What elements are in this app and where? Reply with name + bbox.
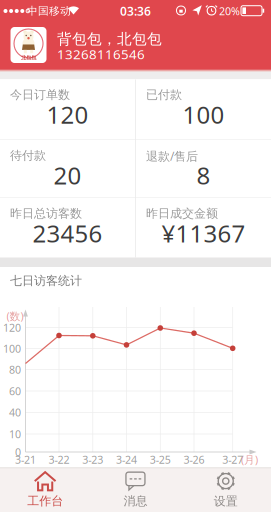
staticText: 北包包 xyxy=(21,54,36,61)
button[interactable]: 消息 xyxy=(90,467,181,512)
staticText: 今日订单数 xyxy=(10,87,70,102)
staticText: 昨日总访客数 xyxy=(10,206,82,221)
button[interactable]: 退款/售后 xyxy=(136,140,271,197)
staticText: 3-24 xyxy=(116,452,137,467)
staticText: ¥11367 xyxy=(162,217,246,249)
staticText: 消息 xyxy=(123,494,147,508)
staticText: 3-26 xyxy=(183,452,204,467)
button[interactable]: 今日订单数 xyxy=(0,79,135,139)
staticText: 120 xyxy=(46,99,88,130)
staticText: 80 xyxy=(9,362,21,377)
staticText: 100 xyxy=(3,341,21,356)
button[interactable]: 昨日总访客数 xyxy=(0,198,135,257)
staticText: 退款/售后 xyxy=(146,148,198,164)
button[interactable]: 待付款 xyxy=(0,140,135,197)
staticText: 3-23 xyxy=(82,452,103,467)
staticText: 60 xyxy=(9,384,21,398)
staticText: 昨日成交金额 xyxy=(146,206,218,221)
staticText: 03:36 xyxy=(120,3,151,19)
staticText: 设置 xyxy=(214,494,238,509)
staticText: 23456 xyxy=(32,217,102,249)
staticText: (数) xyxy=(6,309,23,323)
staticText: 20 xyxy=(53,159,81,191)
staticText: 8 xyxy=(197,159,211,191)
button[interactable]: 工作台 xyxy=(0,467,90,512)
staticText: 背包包，北包包 xyxy=(57,30,162,48)
staticText: 100 xyxy=(183,99,225,130)
staticText: 3-27 xyxy=(222,452,243,467)
staticText: 已付款 xyxy=(146,87,182,102)
staticText: 40 xyxy=(9,405,21,419)
staticText: 10 xyxy=(9,427,21,441)
staticText: 13268116546 xyxy=(57,45,145,63)
staticText: 3-25 xyxy=(150,452,171,467)
staticText: 七日访客统计 xyxy=(10,273,82,288)
button[interactable]: 已付款 xyxy=(136,79,271,139)
staticText: 0 xyxy=(15,445,21,459)
staticText: 中国移动 xyxy=(27,4,71,17)
staticText: 120 xyxy=(3,320,21,335)
staticText: (月) xyxy=(241,452,258,467)
staticText: 工作台 xyxy=(27,494,63,508)
staticText: 20% xyxy=(219,4,240,18)
staticText: 待付款 xyxy=(10,148,46,163)
staticText: 3-21 xyxy=(15,452,36,467)
button[interactable]: 设置 xyxy=(181,467,271,512)
button[interactable]: 昨日成交金额 xyxy=(136,198,271,257)
button[interactable]: 北包包 xyxy=(10,27,46,63)
staticText: 3-22 xyxy=(48,452,69,467)
